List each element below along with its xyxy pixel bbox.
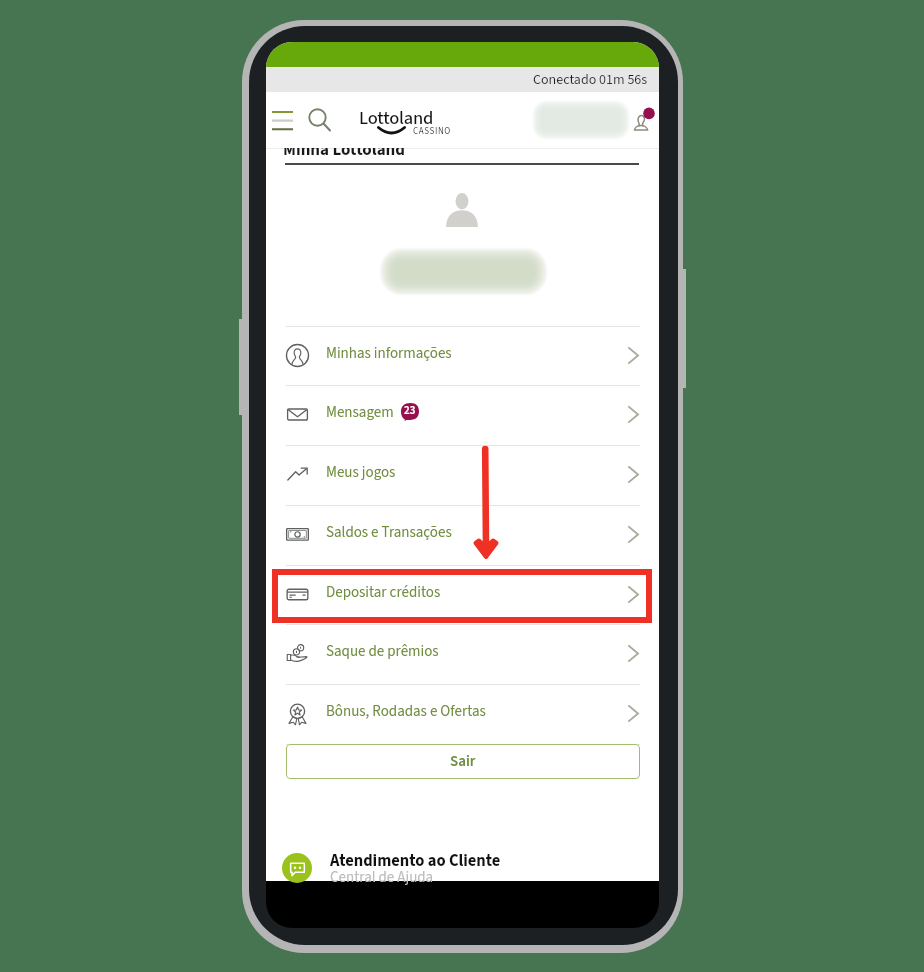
staticText: Sair	[450, 751, 476, 772]
staticText: Conectado 01m 56s	[533, 70, 648, 90]
staticText: CASSINO	[413, 125, 473, 138]
button[interactable]: Meus jogos	[286, 445, 640, 505]
staticText: Mensagem	[326, 402, 394, 423]
button[interactable]: Search	[305, 98, 335, 142]
staticText: Meus jogos	[326, 462, 396, 483]
staticText: Depositar créditos	[326, 582, 441, 603]
button[interactable]: Depositar créditos	[286, 565, 640, 625]
button[interactable]: Menu	[269, 98, 296, 142]
button[interactable]: Account	[630, 98, 658, 142]
button[interactable]: Saldos e Transações	[286, 505, 640, 565]
button[interactable]: Mensagem	[286, 385, 640, 445]
button[interactable]: Saque de prêmios	[286, 624, 640, 684]
button[interactable]: Minhas informações	[286, 326, 640, 386]
button[interactable]: Atendimento ao Cliente	[276, 840, 636, 896]
staticText: Bônus, Rodadas e Ofertas	[326, 701, 486, 722]
staticText: Minha Lottoland	[283, 138, 406, 162]
button[interactable]: Sair	[286, 744, 640, 779]
staticText: Central de Ajuda	[330, 867, 434, 888]
staticText: Saldos e Transações	[326, 522, 452, 543]
staticText: Lottoland	[359, 105, 459, 131]
staticText: Minhas informações	[326, 343, 452, 364]
staticText: Saque de prêmios	[326, 641, 439, 662]
staticText: 23	[404, 403, 416, 419]
staticText: Atendimento ao Cliente	[330, 849, 501, 872]
button[interactable]: Bônus, Rodadas e Ofertas	[286, 684, 640, 744]
